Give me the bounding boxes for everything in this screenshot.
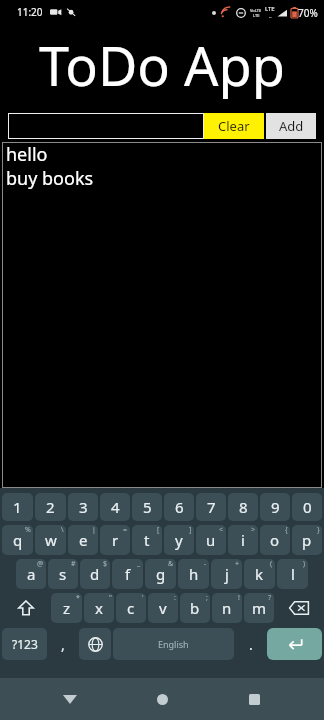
staticText: > <box>251 525 256 535</box>
button[interactable]: 0 <box>292 493 322 521</box>
button[interactable]: 3 <box>68 493 98 521</box>
staticText: ? <box>268 593 272 603</box>
staticText: $ <box>103 559 108 569</box>
button[interactable]: n <box>212 593 242 623</box>
button[interactable]: e <box>68 525 98 555</box>
staticText: LTE <box>253 13 260 18</box>
button[interactable]: Clear <box>204 113 264 139</box>
staticText: ) <box>303 559 306 569</box>
button[interactable]: 4 <box>100 493 130 521</box>
button[interactable]: 6 <box>164 493 194 521</box>
button[interactable]: Backspace <box>276 593 322 623</box>
staticText: f <box>125 564 131 584</box>
button[interactable]: j <box>211 559 242 589</box>
button[interactable]: 7 <box>196 493 226 521</box>
staticText: 9 <box>271 497 280 517</box>
staticText: ' <box>142 593 144 603</box>
button[interactable]: w <box>35 525 66 555</box>
button[interactable]: f <box>112 559 143 589</box>
button[interactable]: Enter <box>267 628 322 660</box>
button[interactable]: a <box>16 559 46 589</box>
button[interactable]: 9 <box>260 493 290 521</box>
button[interactable]: l <box>277 559 308 589</box>
staticText: s <box>59 564 67 584</box>
button[interactable]: 8 <box>228 493 258 521</box>
staticText: hello <box>6 142 48 166</box>
button[interactable]: Shift <box>2 593 49 623</box>
staticText: Clear <box>218 117 250 135</box>
staticText: LTE <box>265 5 275 13</box>
staticText: } <box>317 525 320 535</box>
button[interactable]: b <box>180 593 210 623</box>
button[interactable]: i <box>228 525 258 555</box>
staticText: 7 <box>207 497 216 517</box>
button[interactable]: hello <box>2 142 322 166</box>
button[interactable]: c <box>116 593 146 623</box>
button[interactable]: Add <box>266 113 316 139</box>
button[interactable]: Change language <box>79 628 111 660</box>
staticText: English <box>158 638 189 650</box>
button[interactable]: g <box>145 559 176 589</box>
staticText: c <box>127 598 135 618</box>
button[interactable]: s <box>48 559 78 589</box>
button[interactable]: m <box>244 593 274 623</box>
staticText: VoLTE <box>250 8 262 13</box>
button[interactable]: . <box>236 628 265 660</box>
button[interactable]: d <box>80 559 110 589</box>
staticText: + <box>235 559 240 569</box>
button[interactable]: o <box>260 525 290 555</box>
button[interactable]: u <box>196 525 226 555</box>
staticText: : <box>174 593 176 603</box>
button[interactable]: v <box>148 593 178 623</box>
button[interactable]: r <box>100 525 130 555</box>
button[interactable]: x <box>84 593 114 623</box>
staticText: 0 <box>303 497 312 517</box>
staticText: ( <box>270 559 273 569</box>
button[interactable]: , <box>49 628 77 660</box>
staticText: g <box>156 564 166 584</box>
button[interactable] <box>8 113 204 139</box>
button[interactable]: Home <box>140 678 184 720</box>
staticText: ?123 <box>12 636 38 652</box>
button[interactable]: q <box>2 525 33 555</box>
button[interactable]: p <box>292 525 322 555</box>
button[interactable]: buy books <box>2 166 322 190</box>
button[interactable]: y <box>164 525 194 555</box>
staticText: % <box>25 525 31 535</box>
staticText: u <box>206 530 216 550</box>
button[interactable]: ?123 <box>2 628 47 660</box>
staticText: l <box>291 564 295 584</box>
staticText: m <box>252 598 267 618</box>
staticText: h <box>189 564 199 584</box>
staticText: & <box>168 559 174 569</box>
staticText: " <box>109 593 112 603</box>
staticText: - <box>204 559 207 569</box>
staticText: .. <box>269 13 272 20</box>
staticText: | <box>92 525 96 535</box>
staticText: ; <box>206 593 208 603</box>
staticText: . <box>249 635 253 654</box>
staticText: 11:20 <box>17 5 43 19</box>
staticText: buy books <box>6 166 94 190</box>
button[interactable]: 2 <box>35 493 66 521</box>
button[interactable]: Recents <box>232 678 276 720</box>
button[interactable]: h <box>178 559 209 589</box>
staticText: 6 <box>175 497 184 517</box>
button[interactable]: 1 <box>2 493 33 521</box>
staticText: i <box>241 530 245 550</box>
button[interactable]: Back <box>48 678 92 720</box>
staticText: w <box>45 530 57 550</box>
button[interactable]: z <box>51 593 82 623</box>
staticText: q <box>13 530 23 550</box>
staticText: j <box>225 564 229 584</box>
staticText: 5 <box>143 497 152 517</box>
button[interactable]: k <box>244 559 275 589</box>
button[interactable]: 5 <box>132 493 162 521</box>
staticText: 1 <box>13 497 22 517</box>
staticText: 8 <box>239 497 248 517</box>
button[interactable]: t <box>132 525 162 555</box>
button[interactable]: English <box>113 628 234 660</box>
staticText: [ <box>157 525 160 535</box>
staticText: 4 <box>111 497 120 517</box>
staticText: Add <box>279 117 304 135</box>
